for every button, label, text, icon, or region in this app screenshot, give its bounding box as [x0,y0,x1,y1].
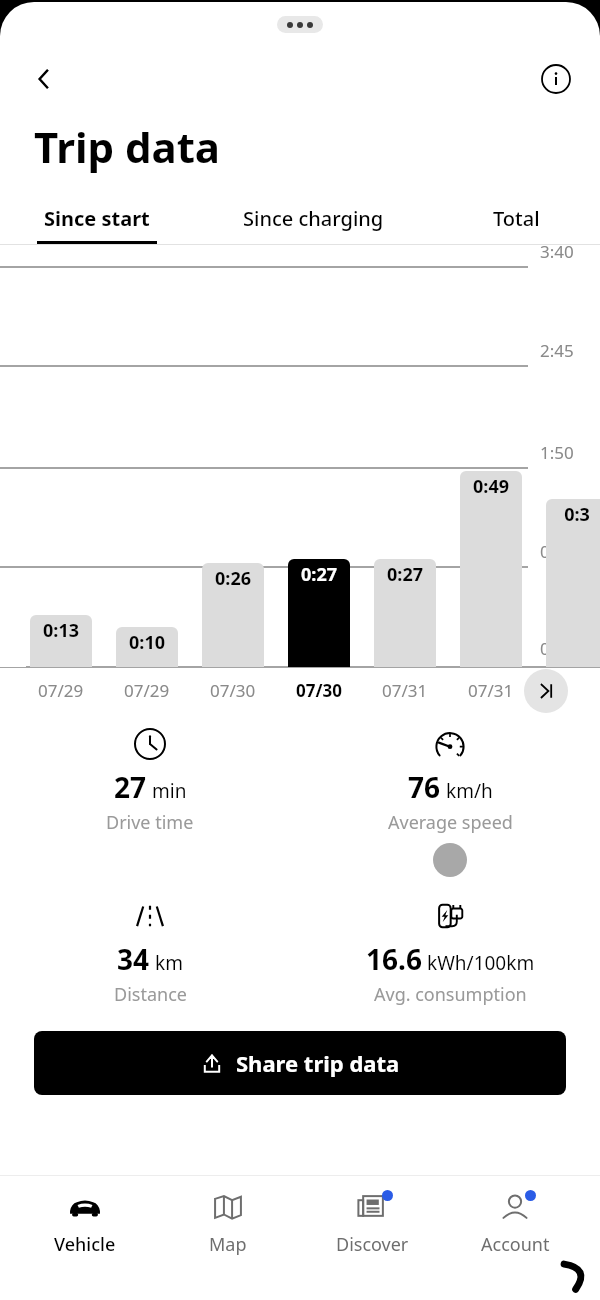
staticText: Trip data [34,118,221,175]
staticText: min [152,778,187,804]
button[interactable]: 76 [300,727,600,877]
staticText: 2:45 [540,339,574,362]
staticText: 0:26 [215,566,251,591]
staticText: 0:49 [473,474,509,499]
staticText: 07/30 [296,679,342,702]
staticText: km [155,950,183,976]
staticText: 34 [117,940,150,978]
staticText: Average speed [388,810,513,835]
staticText: 0:27 [301,562,337,587]
staticText: 27 [114,768,147,806]
button[interactable]: 34 [0,899,300,1007]
button[interactable]: Account [457,1190,573,1257]
staticText: 76 [408,768,441,806]
staticText: Map [209,1232,247,1257]
staticText: 0:27 [387,562,423,587]
staticText: Since charging [243,205,384,232]
staticText: Vehicle [54,1232,116,1257]
button[interactable]: Share trip data [34,1031,566,1095]
staticText: Distance [114,982,187,1007]
staticText: Total [493,205,540,232]
staticText: 0:3 [564,502,590,527]
button[interactable]: Since charging [194,205,432,244]
staticText: kWh/100km [427,950,535,976]
staticText: 0:10 [129,630,165,655]
button[interactable]: Vehicle [27,1190,143,1257]
button[interactable] [116,627,178,667]
staticText: 16.6 [366,940,422,978]
staticText: Discover [336,1232,409,1257]
staticText: Share trip data [236,1048,400,1078]
staticText: 0:13 [43,618,79,643]
button[interactable]: Next [524,669,568,713]
staticText: 07/30 [210,679,256,702]
button[interactable]: 16.6 [300,899,600,1007]
button[interactable]: Total [432,205,600,244]
button[interactable] [546,499,600,667]
button[interactable]: Back [22,57,66,101]
staticText: 07/29 [38,679,84,702]
staticText: 0:00 [540,637,574,660]
staticText: Drive time [106,810,194,835]
button[interactable] [288,559,350,667]
staticText: 3:40 [540,240,574,263]
button[interactable]: Since start [0,205,194,244]
button[interactable] [374,559,436,667]
staticText: 07/31 [382,679,428,702]
staticText: Since start [44,205,150,232]
staticText: 07/31 [468,679,514,702]
staticText: 1:50 [540,441,574,464]
staticText: km/h [446,778,493,804]
button[interactable]: Map [170,1190,286,1257]
button[interactable]: Discover [314,1190,430,1257]
button[interactable] [30,615,92,667]
staticText: Account [481,1232,550,1257]
staticText: 07/29 [124,679,170,702]
button[interactable] [460,471,522,667]
button[interactable]: 27 [0,727,300,835]
button[interactable] [202,563,264,667]
staticText: 0:55 [540,540,574,563]
staticText: Avg. consumption [374,982,527,1007]
button[interactable]: Info [534,57,578,101]
